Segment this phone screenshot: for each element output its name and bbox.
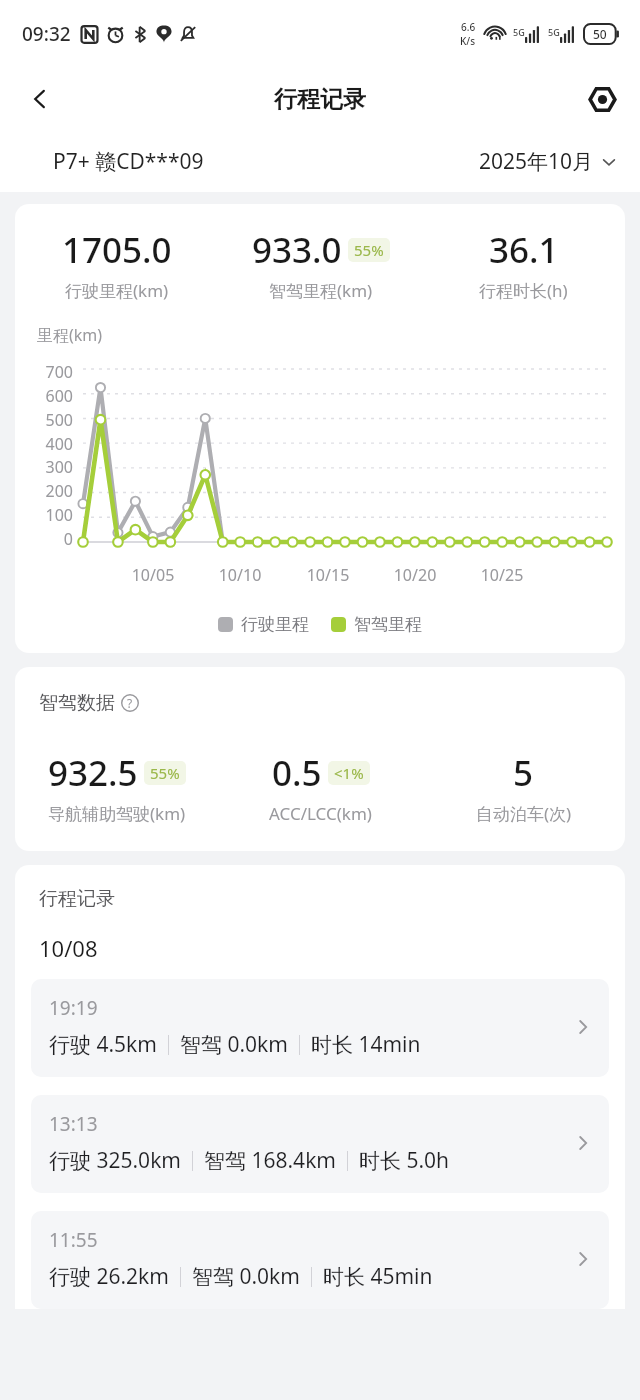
staticText: 0.5 [272,749,322,797]
staticText: 5 [513,749,534,797]
staticText: 100 [45,504,73,526]
staticText: 200 [45,480,73,502]
staticText: 55% [354,240,384,260]
staticText: ? [127,695,133,711]
staticText: 10/20 [385,564,445,586]
staticText: 时长 5.0h [359,1146,450,1175]
staticText: 400 [45,433,73,455]
staticText: 智驾里程 [354,614,422,635]
staticText: 行程记录 [39,887,115,911]
staticText: 50 [593,26,607,42]
staticText: 1705.0 [62,226,172,274]
staticText: 55% [150,763,180,783]
staticText: 13:13 [49,1111,98,1137]
staticText: 行驶里程 [241,614,309,635]
staticText: 300 [45,456,73,478]
staticText: 智驾数据 [39,691,115,715]
staticText: 智驾 0.0km [192,1262,300,1291]
staticText: 10/15 [298,564,358,586]
staticText: 行程记录 [274,85,366,114]
staticText: 933.0 [252,226,342,274]
staticText: P7+ 赣CD***09 [53,147,204,176]
staticText: 10/10 [210,564,270,586]
button[interactable]: Help [119,692,141,714]
staticText: 932.5 [48,749,138,797]
staticText: 700 [45,361,73,383]
staticText: <1% [334,763,364,783]
staticText: 行驶里程(km) [65,279,169,302]
staticText: 行驶 4.5km [49,1030,157,1059]
staticText: 11:55 [49,1227,98,1253]
staticText: 2025年10月 [479,147,594,176]
staticText: 时长 14min [311,1030,421,1059]
staticText: 6.6 [461,20,476,34]
staticText: 自动泊车(次) [476,802,572,825]
staticText: 导航辅助驾驶(km) [48,802,186,825]
staticText: 10/08 [39,933,98,963]
button[interactable]: 11:55 [31,1211,609,1309]
button[interactable]: 13:13 [31,1095,609,1193]
staticText: 19:19 [49,995,98,1021]
button[interactable]: Back [16,75,64,123]
staticText: 600 [45,385,73,407]
button[interactable]: Settings [578,75,626,123]
staticText: 智驾 0.0km [180,1030,288,1059]
staticText: 时长 45min [323,1262,433,1291]
staticText: 500 [45,409,73,431]
staticText: 行驶 26.2km [49,1262,169,1291]
staticText: 里程(km) [37,324,103,346]
staticText: ACC/LCC(km) [269,802,372,825]
staticText: 36.1 [489,226,559,274]
staticText: 10/05 [123,564,183,586]
staticText: K/s [460,34,476,48]
staticText: 5G [513,26,525,38]
staticText: 09:32 [22,21,71,47]
staticText: 5G [548,26,560,38]
button[interactable]: 2025年10月 [479,147,618,176]
staticText: 智驾 168.4km [204,1146,336,1175]
staticText: 10/25 [472,564,532,586]
staticText: 行驶 325.0km [49,1146,181,1175]
staticText: 行程时长(h) [479,279,568,302]
button[interactable]: 19:19 [31,979,609,1077]
staticText: 0 [63,528,73,550]
staticText: 智驾里程(km) [269,279,373,302]
